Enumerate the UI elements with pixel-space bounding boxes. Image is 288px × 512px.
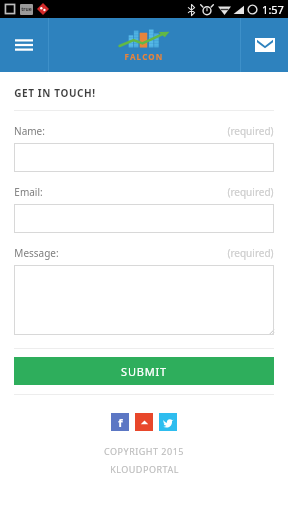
- button[interactable]: [14, 143, 274, 172]
- staticText: f: [118, 415, 123, 430]
- staticText: (required): [227, 124, 274, 138]
- button[interactable]: Twitter: [159, 413, 177, 431]
- staticText: true: [21, 6, 32, 13]
- staticText: SUBMIT: [121, 364, 167, 379]
- button[interactable]: [14, 265, 274, 335]
- staticText: 1:57: [262, 2, 284, 17]
- button[interactable]: Share: [135, 413, 153, 431]
- staticText: KLOUDPORTAL: [110, 463, 179, 475]
- staticText: FALCON: [124, 51, 164, 62]
- button[interactable]: Facebook: [111, 413, 129, 431]
- staticText: Name:: [14, 124, 45, 138]
- button[interactable]: Contact: [241, 18, 288, 72]
- button[interactable]: Menu: [0, 18, 48, 72]
- staticText: (required): [227, 185, 274, 199]
- staticText: Email:: [14, 185, 43, 199]
- button[interactable]: SUBMIT: [14, 357, 274, 385]
- staticText: GET IN TOUCH!: [14, 86, 96, 100]
- staticText: Message:: [14, 246, 59, 260]
- staticText: COPYRIGHT 2015: [104, 445, 184, 457]
- button[interactable]: [14, 204, 274, 233]
- staticText: (required): [227, 246, 274, 260]
